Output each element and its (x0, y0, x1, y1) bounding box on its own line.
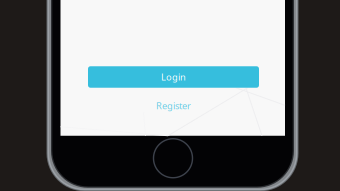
button[interactable]: Register (142, 99, 204, 113)
staticText: Register (156, 100, 191, 112)
staticText: Login (161, 71, 186, 83)
button[interactable]: Login (88, 66, 259, 88)
